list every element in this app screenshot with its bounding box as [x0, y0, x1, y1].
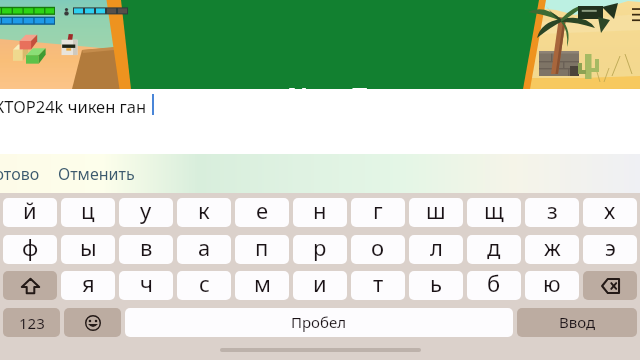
staticText: х: [604, 198, 616, 224]
staticText: щ: [484, 198, 504, 224]
staticText: л: [430, 235, 443, 261]
staticText: КТОР24k чикен ган: [0, 95, 147, 117]
button[interactable]: 123: [3, 308, 60, 337]
button[interactable]: д: [467, 235, 521, 264]
staticText: й: [23, 198, 37, 224]
button[interactable]: б: [467, 271, 521, 300]
button[interactable]: м: [235, 271, 289, 300]
staticText: и: [313, 271, 327, 297]
button[interactable]: р: [293, 235, 347, 264]
staticText: б: [487, 271, 501, 297]
staticText: ц: [81, 198, 95, 224]
staticText: н: [313, 198, 327, 224]
button[interactable]: ж: [525, 235, 579, 264]
button[interactable]: с: [177, 271, 231, 300]
staticText: в: [140, 235, 153, 261]
button[interactable]: ш: [409, 198, 463, 227]
staticText: New Text: [287, 79, 407, 114]
staticText: ь: [430, 271, 442, 297]
staticText: о: [371, 235, 385, 261]
staticText: е: [256, 198, 269, 224]
button[interactable]: Ввод: [517, 308, 637, 337]
staticText: г: [373, 198, 383, 224]
button[interactable]: н: [293, 198, 347, 227]
button[interactable]: ц: [61, 198, 115, 227]
button[interactable]: о: [351, 235, 405, 264]
staticText: Отменить: [58, 163, 135, 185]
button[interactable]: я: [61, 271, 115, 300]
button[interactable]: Пробел: [125, 308, 513, 337]
button[interactable]: КТОР24k чикен ган: [0, 89, 640, 154]
button[interactable]: в: [119, 235, 173, 264]
staticText: з: [547, 198, 558, 224]
button[interactable]: Key: [583, 271, 637, 300]
button[interactable]: й: [3, 198, 57, 227]
staticText: ж: [544, 235, 561, 261]
button[interactable]: Готово: [0, 154, 40, 193]
staticText: э: [605, 235, 616, 261]
button[interactable]: л: [409, 235, 463, 264]
button[interactable]: Отменить: [58, 154, 135, 193]
button[interactable]: Emoji: [64, 308, 121, 337]
staticText: к: [198, 198, 210, 224]
button[interactable]: ю: [525, 271, 579, 300]
staticText: ч: [140, 271, 153, 297]
button[interactable]: Key: [3, 271, 57, 300]
button[interactable]: е: [235, 198, 289, 227]
button[interactable]: щ: [467, 198, 521, 227]
staticText: Ввод: [559, 312, 596, 332]
staticText: я: [82, 271, 95, 297]
staticText: 123: [19, 313, 45, 333]
button[interactable]: э: [583, 235, 637, 264]
staticText: ю: [543, 271, 561, 297]
staticText: р: [313, 235, 327, 261]
staticText: Готово: [0, 163, 40, 185]
staticText: ы: [80, 235, 97, 261]
button[interactable]: ы: [61, 235, 115, 264]
staticText: с: [199, 271, 210, 297]
staticText: п: [255, 235, 269, 261]
staticText: у: [140, 198, 152, 224]
staticText: Пробел: [291, 312, 347, 332]
button[interactable]: а: [177, 235, 231, 264]
button[interactable]: з: [525, 198, 579, 227]
button[interactable]: ь: [409, 271, 463, 300]
button[interactable]: к: [177, 198, 231, 227]
staticText: т: [373, 271, 384, 297]
button[interactable]: ч: [119, 271, 173, 300]
staticText: д: [487, 235, 501, 261]
button[interactable]: у: [119, 198, 173, 227]
staticText: м: [254, 271, 271, 297]
button[interactable]: т: [351, 271, 405, 300]
button[interactable]: х: [583, 198, 637, 227]
button[interactable]: п: [235, 235, 289, 264]
button[interactable]: ф: [3, 235, 57, 264]
button[interactable]: и: [293, 271, 347, 300]
staticText: ш: [426, 198, 446, 224]
button[interactable]: г: [351, 198, 405, 227]
staticText: ф: [22, 235, 39, 261]
staticText: а: [198, 235, 211, 261]
